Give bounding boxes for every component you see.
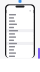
button[interactable]: List item 13 [6, 51, 33, 55]
button[interactable]: List item 1 [6, 13, 33, 16]
button[interactable]: App badge [18, 0, 21, 3]
button[interactable]: List item 4 [6, 23, 33, 26]
button[interactable]: List item 14 [6, 55, 33, 58]
button[interactable]: List item 3 [6, 19, 33, 23]
button[interactable]: List item 10 [6, 42, 33, 45]
button[interactable]: More options [29, 10, 31, 12]
button[interactable]: List item 2 [6, 16, 33, 19]
button[interactable]: List item 9 [6, 39, 33, 42]
button[interactable]: List item 12 [6, 48, 33, 51]
button[interactable]: List item 6 [6, 29, 33, 32]
button[interactable]: List item 5 [6, 26, 33, 29]
button[interactable]: List item 8 [6, 35, 33, 39]
button[interactable]: List item 7 [6, 32, 33, 35]
button[interactable]: List item 11 [6, 45, 33, 48]
